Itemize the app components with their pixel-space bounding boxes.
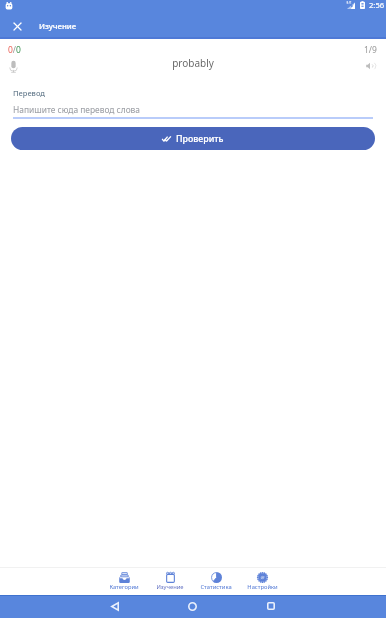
button[interactable]: Play pronunciation	[366, 62, 376, 70]
staticText: Напишите сюда перевод слова	[13, 104, 141, 115]
button[interactable]: Record pronunciation	[9, 60, 18, 73]
button[interactable]: Настройки	[239, 568, 285, 595]
staticText: Настройки	[247, 583, 278, 591]
staticText: Перевод	[13, 88, 45, 98]
staticText: probably	[0, 56, 386, 70]
button[interactable]: Категории	[101, 568, 147, 595]
staticText: 0/0	[8, 44, 21, 56]
button[interactable]: Изучение	[147, 568, 193, 595]
button[interactable]: Back	[105, 596, 125, 616]
staticText: 2:56	[369, 0, 385, 10]
button[interactable]: Home	[182, 596, 202, 616]
button[interactable]: Проверить	[11, 127, 375, 150]
staticText: Категории	[109, 583, 139, 591]
staticText: Проверить	[176, 133, 224, 145]
button[interactable]: Recent apps	[261, 596, 281, 616]
staticText: Изучение	[39, 21, 77, 32]
button[interactable]: Статистика	[193, 568, 239, 595]
button[interactable]: Close	[0, 14, 34, 38]
staticText: Изучение	[156, 583, 184, 591]
staticText: Статистика	[200, 583, 232, 591]
button[interactable]: Translation input field	[11, 104, 375, 115]
staticText: 1/9	[364, 44, 377, 56]
